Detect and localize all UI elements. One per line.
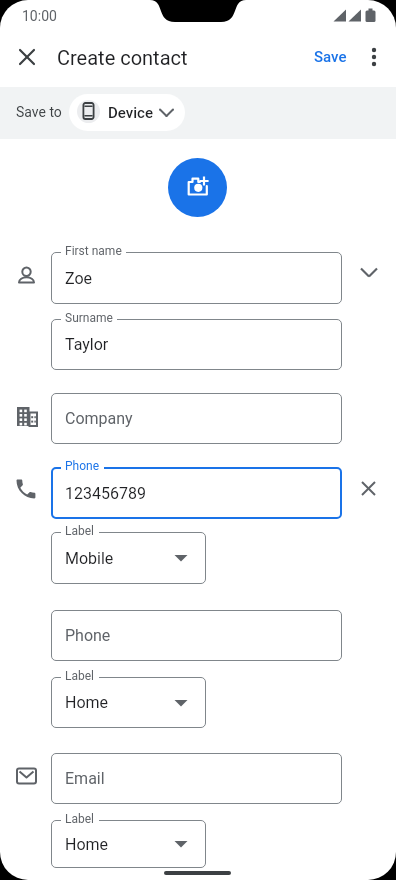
staticText: Save bbox=[314, 48, 347, 66]
button[interactable] bbox=[13, 43, 41, 71]
staticText: Home bbox=[65, 835, 109, 854]
staticText: Company bbox=[65, 409, 133, 428]
button[interactable]: Device bbox=[69, 94, 185, 131]
staticText: Phone bbox=[65, 459, 100, 473]
staticText: 123456789 bbox=[65, 484, 146, 503]
button[interactable] bbox=[362, 45, 386, 69]
staticText: Taylor bbox=[65, 335, 109, 354]
button[interactable]: Taylor bbox=[51, 319, 342, 370]
button[interactable] bbox=[357, 260, 381, 284]
button[interactable]: Email bbox=[51, 753, 342, 804]
staticText: Device bbox=[108, 104, 153, 122]
button[interactable]: Phone bbox=[51, 610, 342, 661]
staticText: Label bbox=[65, 669, 95, 683]
button[interactable]: 123456789 bbox=[51, 467, 342, 519]
staticText: Label bbox=[65, 524, 95, 538]
staticText: Surname bbox=[65, 311, 113, 325]
button[interactable] bbox=[356, 476, 381, 501]
button[interactable]: Zoe bbox=[51, 252, 342, 304]
button[interactable]: Mobile bbox=[51, 532, 206, 584]
button[interactable]: Company bbox=[51, 393, 342, 444]
staticText: First name bbox=[65, 244, 122, 258]
button[interactable]: Save bbox=[305, 42, 355, 72]
staticText: Save to bbox=[16, 104, 62, 120]
staticText: Zoe bbox=[65, 269, 93, 288]
staticText: Create contact bbox=[57, 46, 188, 69]
button[interactable] bbox=[168, 158, 227, 217]
staticText: Mobile bbox=[65, 549, 114, 568]
staticText: Email bbox=[65, 769, 105, 788]
staticText: Label bbox=[65, 812, 95, 826]
staticText: Phone bbox=[65, 626, 111, 645]
button[interactable]: Home bbox=[51, 677, 206, 728]
staticText: 10:00 bbox=[22, 8, 57, 24]
staticText: Home bbox=[65, 693, 109, 712]
button[interactable]: Home bbox=[51, 820, 206, 868]
